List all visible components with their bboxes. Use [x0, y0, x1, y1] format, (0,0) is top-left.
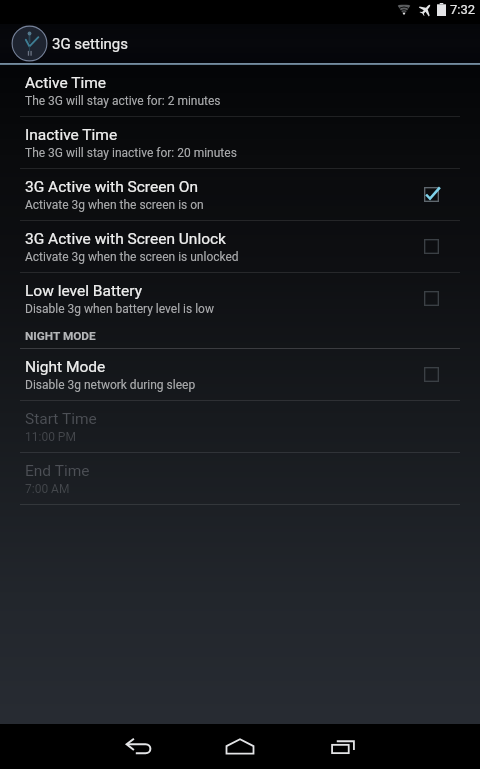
staticText: Disable 3g when battery level is low	[25, 302, 214, 316]
staticText: NIGHT MODE	[25, 329, 96, 343]
staticText: Activate 3g when the screen is unlocked	[25, 250, 239, 264]
staticText: End Time	[25, 462, 90, 480]
button[interactable]: Night Mode	[0, 349, 480, 401]
button[interactable]: 3G Active with Screen On	[0, 169, 480, 221]
staticText: 3G Active with Screen On	[25, 178, 199, 196]
staticText: Start Time	[25, 410, 97, 428]
staticText: Activate 3g when the screen is on	[25, 198, 204, 212]
staticText: 3G Active with Screen Unlock	[25, 230, 226, 248]
button[interactable]: Low level Battery	[0, 273, 480, 325]
staticText: Active Time	[25, 74, 107, 92]
button[interactable]: Recent apps	[319, 724, 367, 769]
button[interactable]: End Time	[0, 453, 480, 505]
staticText: Disable 3g network during sleep	[25, 378, 196, 392]
staticText: Inactive Time	[25, 126, 118, 144]
staticText: 11:00 PM	[25, 430, 76, 444]
staticText: 3G settings	[52, 35, 128, 53]
button[interactable]: Active Time	[0, 65, 480, 117]
staticText: The 3G will stay inactive for: 20 minute…	[25, 146, 237, 160]
button[interactable]: 3G Active with Screen Unlock	[0, 221, 480, 273]
staticText: The 3G will stay active for: 2 minutes	[25, 94, 221, 108]
staticText: 7:00 AM	[25, 482, 70, 496]
staticText: Night Mode	[25, 358, 106, 376]
button[interactable]: Back	[114, 724, 162, 769]
button[interactable]: Inactive Time	[0, 117, 480, 169]
button[interactable]: Start Time	[0, 401, 480, 453]
button[interactable]: Home	[216, 724, 264, 769]
staticText: 7:32	[450, 2, 476, 17]
staticText: Low level Battery	[25, 282, 142, 300]
